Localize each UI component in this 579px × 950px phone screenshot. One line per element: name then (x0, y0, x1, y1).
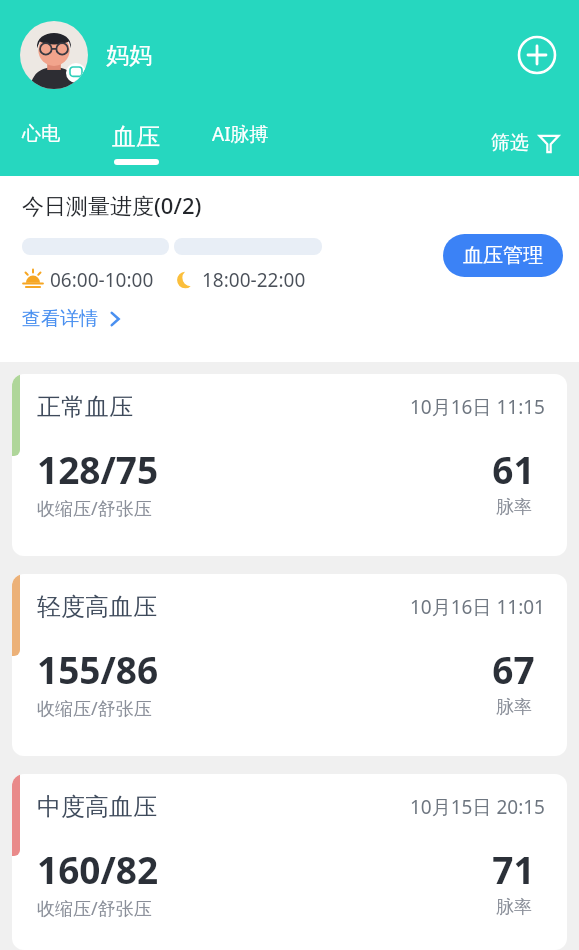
button[interactable]: 血压 (112, 122, 160, 165)
staticText: 中度高血压 (37, 792, 157, 822)
staticText: 今日测量进度(0/2) (22, 190, 202, 220)
button[interactable]: 心电 (22, 122, 60, 164)
button[interactable]: AI脉搏 (212, 121, 269, 165)
button[interactable]: 筛选 (491, 131, 561, 155)
staticText: 心电 (22, 122, 60, 146)
staticText: 脉率 (496, 496, 532, 519)
staticText: 脉率 (496, 696, 532, 719)
staticText: AI脉搏 (212, 121, 269, 147)
button[interactable]: 血压管理 (443, 234, 563, 277)
staticText: 收缩压/舒张压 (37, 496, 152, 521)
staticText: 10月16日 11:01 (410, 594, 545, 620)
staticText: 收缩压/舒张压 (37, 896, 152, 921)
staticText: 查看详情 (22, 307, 98, 331)
button[interactable]: 正常血压 (12, 374, 567, 556)
staticText: 18:00-22:00 (202, 267, 306, 293)
staticText: 血压管理 (463, 243, 543, 268)
button[interactable]: Profile (20, 21, 88, 89)
button[interactable]: 轻度高血压 (12, 574, 567, 756)
staticText: 收缩压/舒张压 (37, 696, 152, 721)
staticText: 155/86 (37, 644, 159, 694)
staticText: 10月16日 11:15 (410, 394, 545, 420)
button[interactable]: 中度高血压 (12, 774, 567, 950)
staticText: 筛选 (491, 131, 529, 155)
staticText: 血压 (112, 122, 160, 152)
button[interactable]: 查看详情 (22, 307, 124, 331)
staticText: 妈妈 (106, 41, 152, 70)
button[interactable]: Add (515, 33, 559, 77)
staticText: 正常血压 (37, 392, 133, 422)
staticText: 轻度高血压 (37, 592, 157, 622)
staticText: 06:00-10:00 (50, 267, 154, 293)
staticText: 脉率 (496, 896, 532, 919)
staticText: 71 (492, 844, 535, 894)
staticText: 10月15日 20:15 (410, 794, 545, 820)
staticText: 61 (492, 444, 535, 494)
staticText: 160/82 (37, 844, 159, 894)
staticText: 128/75 (37, 444, 159, 494)
staticText: 67 (492, 644, 535, 694)
